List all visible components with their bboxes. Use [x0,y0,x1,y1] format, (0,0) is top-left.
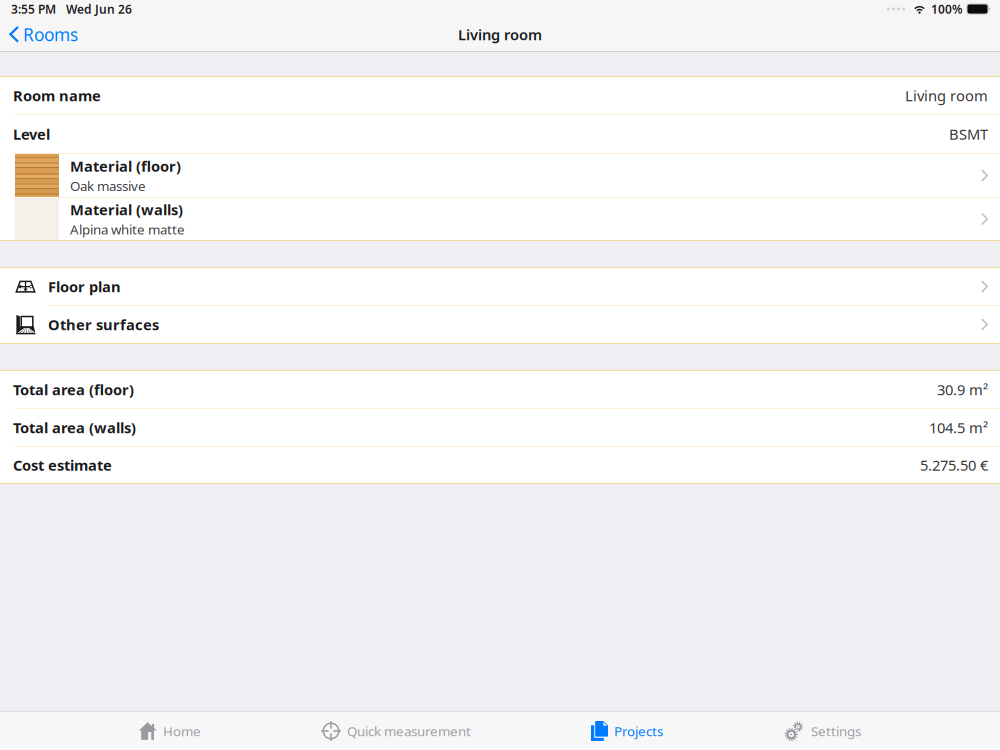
staticText: Total area (walls) [13,418,136,437]
staticText: Home [163,722,201,740]
button[interactable]: Material (floor) [0,154,1000,197]
staticText: Oak massive [70,177,146,195]
staticText: Wed Jun 26 [66,1,132,17]
staticText: 104.5 m² [929,418,988,437]
button[interactable]: Rooms [0,18,88,51]
button[interactable]: Home [139,712,201,750]
button[interactable]: Total area (walls) [0,409,1000,446]
staticText: Other surfaces [48,315,159,334]
staticText: Material (floor) [70,156,181,176]
button[interactable]: Other surfaces [0,306,1000,343]
staticText: 3:55 PM [11,1,56,17]
staticText: 100% [931,1,963,17]
button[interactable]: Projects [591,712,663,750]
button[interactable]: Total area (floor) [0,371,1000,408]
staticText: 5.275.50 € [920,455,988,475]
button[interactable]: Quick measurement [321,712,471,750]
staticText: Floor plan [48,277,121,296]
button[interactable]: Cost estimate [0,447,1000,483]
staticText: Quick measurement [347,722,471,740]
staticText: Living room [905,86,988,105]
staticText: Projects [614,722,663,740]
staticText: 30.9 m² [937,380,988,399]
button[interactable]: Room name [0,77,1000,114]
button[interactable]: Material (walls) [0,198,1000,240]
staticText: Rooms [23,23,78,46]
staticText: Alpina white matte [70,220,185,238]
staticText: Room name [13,86,101,105]
staticText: Level [13,124,50,144]
staticText: Cost estimate [13,455,112,475]
staticText: Settings [811,722,861,740]
staticText: BSMT [949,124,988,144]
staticText: Material (walls) [70,200,183,219]
staticText: Total area (floor) [13,380,134,399]
staticText: Living room [458,25,542,44]
button[interactable]: Level [0,115,1000,153]
button[interactable]: Floor plan [0,268,1000,305]
button[interactable]: Settings [783,712,861,750]
